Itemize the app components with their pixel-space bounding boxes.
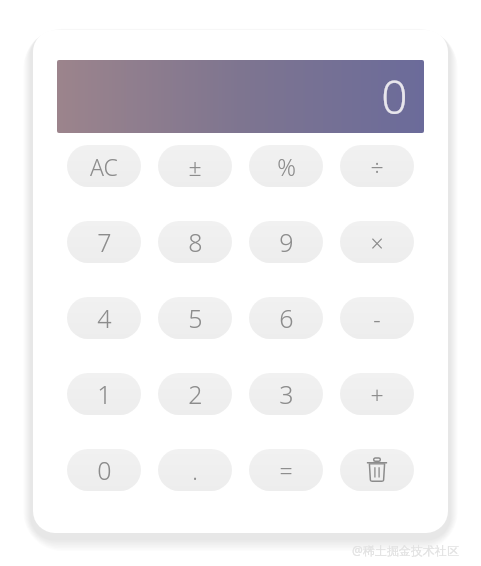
staticText: ÷ <box>370 151 384 182</box>
staticText: 5 <box>188 301 203 335</box>
button[interactable]: 2 <box>158 373 232 415</box>
button[interactable]: = <box>249 449 323 491</box>
button[interactable]: - <box>340 297 414 339</box>
staticText: ± <box>188 151 202 182</box>
button[interactable]: % <box>249 145 323 187</box>
staticText: 0 <box>97 453 112 487</box>
staticText: . <box>192 455 198 486</box>
button[interactable]: ÷ <box>340 145 414 187</box>
staticText: 0 <box>381 65 408 128</box>
staticText: 7 <box>97 225 112 259</box>
staticText: + <box>370 379 384 410</box>
button[interactable]: Delete <box>340 449 414 491</box>
button[interactable]: 5 <box>158 297 232 339</box>
button[interactable]: 4 <box>67 297 141 339</box>
button[interactable]: 6 <box>249 297 323 339</box>
button[interactable]: 3 <box>249 373 323 415</box>
staticText: % <box>277 151 296 182</box>
button[interactable]: . <box>158 449 232 491</box>
button[interactable]: 1 <box>67 373 141 415</box>
button[interactable]: 8 <box>158 221 232 263</box>
staticText: 4 <box>97 301 112 335</box>
staticText: - <box>373 303 381 334</box>
button[interactable]: AC <box>67 145 141 187</box>
staticText: = <box>279 455 293 486</box>
staticText: 3 <box>279 377 294 411</box>
button[interactable]: 7 <box>67 221 141 263</box>
staticText: 1 <box>97 377 112 411</box>
staticText: 2 <box>188 377 203 411</box>
button[interactable]: 0 <box>67 449 141 491</box>
staticText: 8 <box>188 225 203 259</box>
staticText: 9 <box>279 225 294 259</box>
button[interactable]: × <box>340 221 414 263</box>
staticText: 6 <box>279 301 294 335</box>
button[interactable]: 9 <box>249 221 323 263</box>
button[interactable]: + <box>340 373 414 415</box>
staticText: AC <box>90 151 118 182</box>
staticText: × <box>370 227 384 258</box>
button[interactable]: ± <box>158 145 232 187</box>
staticText: @稀土掘金技术社区 <box>352 542 459 558</box>
